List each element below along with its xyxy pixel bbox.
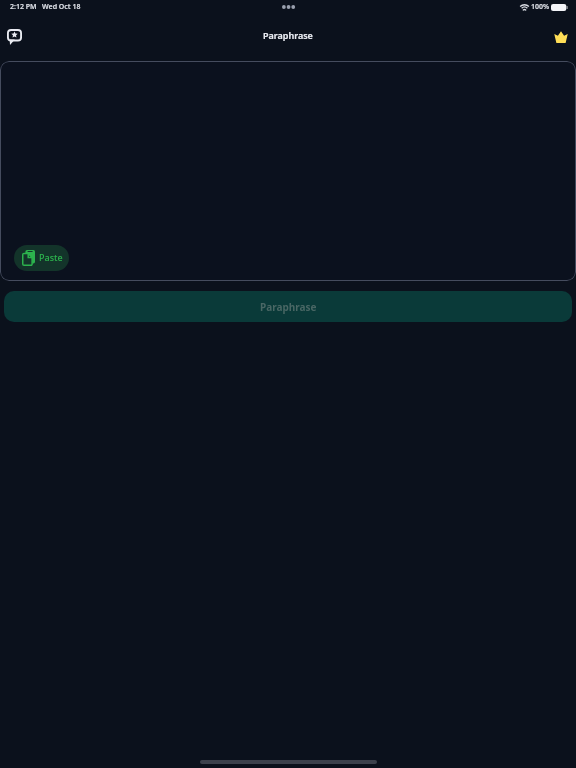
staticText: Wed Oct 18 <box>42 2 81 12</box>
button[interactable]: Upgrade to premium <box>548 24 574 50</box>
button[interactable]: Paste <box>14 245 69 271</box>
staticText: Paraphrase <box>263 29 313 41</box>
button[interactable]: Paraphrase <box>4 291 572 322</box>
staticText: Paste <box>39 251 63 263</box>
button[interactable]: Enter text to paraphrase <box>0 61 576 281</box>
staticText: Paraphrase <box>260 300 317 314</box>
button[interactable]: Send feedback <box>1 24 27 50</box>
staticText: 2:12 PM <box>10 2 37 12</box>
staticText: 100% <box>531 2 550 12</box>
